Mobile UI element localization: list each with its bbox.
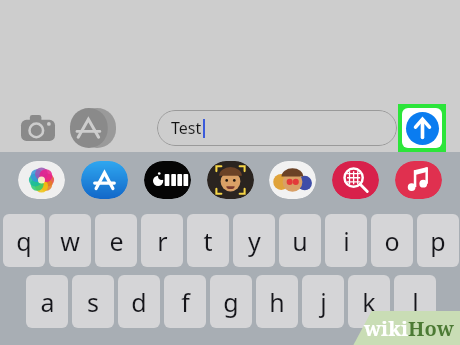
- staticText: h: [269, 285, 285, 319]
- staticText: Test: [171, 117, 202, 139]
- button[interactable]: y: [233, 214, 275, 267]
- button[interactable]: App: [395, 161, 442, 199]
- button[interactable]: e: [95, 214, 137, 267]
- button[interactable]: App: [81, 161, 128, 199]
- button[interactable]: App: [144, 161, 191, 199]
- button[interactable]: g: [210, 275, 252, 328]
- button[interactable]: Camera: [18, 108, 58, 148]
- button[interactable]: App: [207, 161, 254, 199]
- staticText: e: [109, 224, 124, 258]
- button[interactable]: w: [49, 214, 91, 267]
- button[interactable]: u: [279, 214, 321, 267]
- button[interactable]: h: [256, 275, 298, 328]
- button[interactable]: App: [269, 161, 316, 199]
- button[interactable]: t: [187, 214, 229, 267]
- button[interactable]: Test: [157, 110, 397, 146]
- staticText: q: [16, 224, 32, 258]
- button[interactable]: q: [3, 214, 45, 267]
- staticText: a: [40, 285, 55, 319]
- staticText: t: [203, 224, 213, 258]
- staticText: wiki: [364, 315, 408, 342]
- staticText: g: [223, 285, 239, 319]
- staticText: How: [408, 315, 454, 342]
- button[interactable]: o: [371, 214, 413, 267]
- button[interactable]: f: [164, 275, 206, 328]
- staticText: r: [157, 224, 168, 258]
- staticText: k: [362, 285, 376, 319]
- staticText: l: [412, 285, 419, 319]
- button[interactable]: d: [118, 275, 160, 328]
- staticText: i: [343, 224, 350, 258]
- button[interactable]: a: [26, 275, 68, 328]
- staticText: w: [60, 224, 80, 258]
- button[interactable]: l: [394, 275, 436, 328]
- button[interactable]: r: [141, 214, 183, 267]
- button[interactable]: App Store: [70, 108, 116, 148]
- button[interactable]: s: [72, 275, 114, 328]
- staticText: s: [87, 285, 99, 319]
- staticText: j: [320, 285, 327, 319]
- button[interactable]: k: [348, 275, 390, 328]
- button[interactable]: i: [325, 214, 367, 267]
- button[interactable]: Send: [402, 108, 442, 148]
- button[interactable]: j: [302, 275, 344, 328]
- staticText: u: [292, 224, 308, 258]
- staticText: f: [181, 285, 190, 319]
- button[interactable]: p: [417, 214, 459, 267]
- staticText: d: [131, 285, 147, 319]
- button[interactable]: App: [332, 161, 379, 199]
- staticText: y: [248, 224, 261, 258]
- button[interactable]: App: [18, 161, 65, 199]
- staticText: p: [430, 224, 446, 258]
- staticText: o: [384, 224, 400, 258]
